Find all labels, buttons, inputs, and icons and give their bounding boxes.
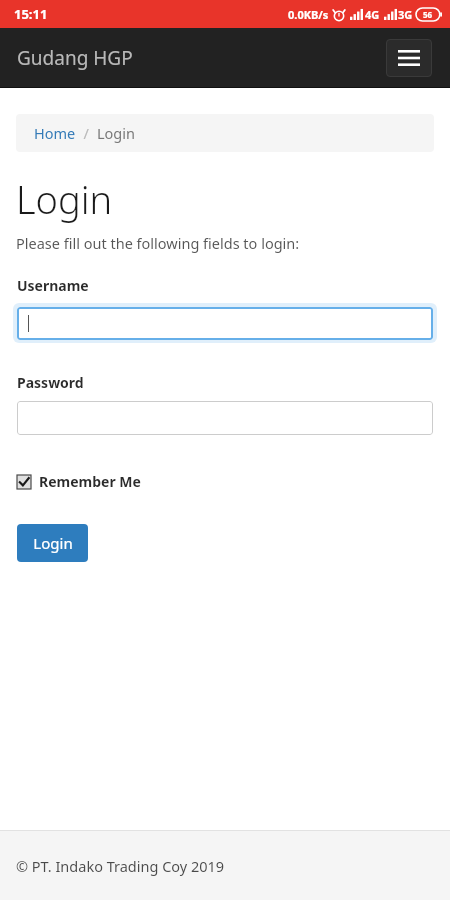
staticText: Please fill out the following fields to … (16, 233, 300, 253)
staticText: 3G (398, 7, 413, 22)
staticText: Login (97, 123, 135, 143)
button[interactable] (17, 401, 433, 435)
staticText: 4G (365, 7, 380, 22)
staticText: / (76, 123, 97, 143)
staticText: 56 (423, 9, 433, 20)
button[interactable] (17, 307, 433, 340)
staticText: © PT. Indako Trading Coy 2019 (16, 856, 225, 876)
button[interactable]: Menu (386, 39, 432, 77)
button[interactable]: Login (17, 524, 88, 562)
staticText: Remember Me (39, 472, 141, 491)
button[interactable]: Remember Me (17, 472, 141, 491)
staticText: Login (16, 173, 113, 225)
staticText: Gudang HGP (17, 45, 133, 71)
staticText: 0.0KB/s (288, 7, 329, 22)
staticText: Login (33, 533, 73, 553)
staticText: Password (17, 373, 84, 392)
staticText: Username (17, 276, 89, 295)
button[interactable]: Home (34, 123, 76, 143)
staticText: 15:11 (14, 5, 48, 23)
